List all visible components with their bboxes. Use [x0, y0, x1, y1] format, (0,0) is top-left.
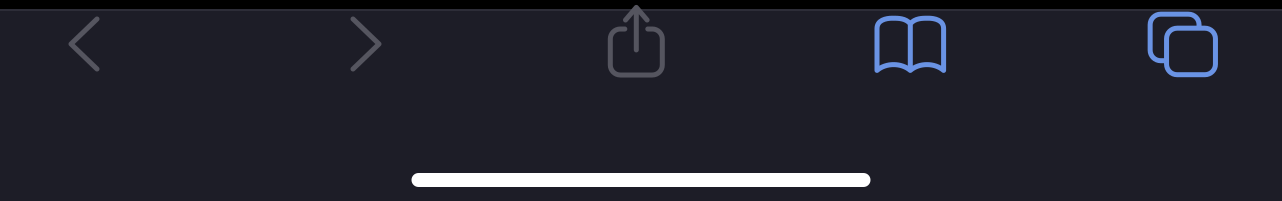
button[interactable]: Forward [304, 0, 428, 90]
button[interactable]: Tabs [1121, 0, 1245, 90]
button[interactable]: Bookmarks [848, 0, 972, 90]
button[interactable]: Back [22, 0, 146, 90]
button[interactable]: Share [574, 0, 698, 87]
